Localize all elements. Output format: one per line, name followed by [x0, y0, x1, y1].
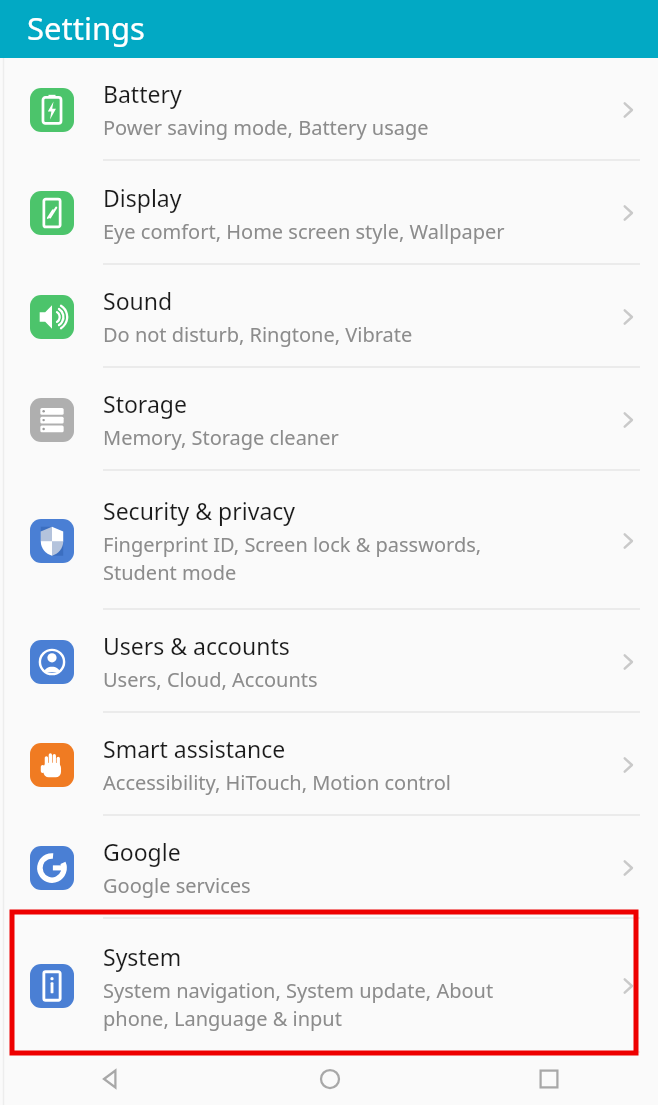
button[interactable]: Security & privacy [0, 471, 658, 610]
staticText: Do not disturb, Ringtone, Vibrate [103, 321, 413, 348]
button[interactable]: Smart assistance [0, 713, 658, 816]
staticText: Accessibility, HiTouch, Motion control [103, 769, 451, 796]
button[interactable]: Users & accounts [0, 610, 658, 713]
staticText: Sound [103, 285, 173, 316]
button[interactable]: Battery [0, 58, 658, 161]
staticText: Eye comfort, Home screen style, Wallpape… [103, 218, 505, 245]
staticText: Security & privacy [103, 495, 296, 526]
button[interactable]: Home [220, 1053, 439, 1105]
button[interactable]: System [0, 919, 658, 1053]
staticText: Fingerprint ID, Screen lock & passwords,… [103, 531, 482, 586]
staticText: System [103, 941, 182, 972]
staticText: Memory, Storage cleaner [103, 424, 339, 451]
staticText: Power saving mode, Battery usage [103, 114, 429, 141]
button[interactable]: Back [0, 1053, 220, 1105]
staticText: Users, Cloud, Accounts [103, 666, 318, 693]
staticText: Users & accounts [103, 630, 290, 661]
staticText: System navigation, System update, About … [103, 977, 494, 1032]
staticText: Storage [103, 388, 187, 419]
staticText: Battery [103, 78, 182, 109]
button[interactable]: Google [0, 816, 658, 919]
staticText: Display [103, 182, 182, 213]
staticText: Smart assistance [103, 733, 286, 764]
staticText: Google [103, 836, 181, 867]
button[interactable]: Sound [0, 265, 658, 368]
button[interactable]: Display [0, 161, 658, 265]
staticText: Settings [27, 7, 145, 49]
button[interactable]: Storage [0, 368, 658, 471]
button[interactable]: Recent apps [439, 1053, 658, 1105]
staticText: Google services [103, 872, 251, 899]
